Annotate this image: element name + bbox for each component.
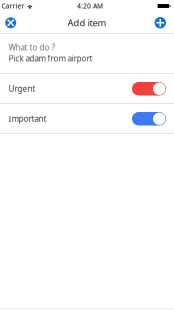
staticText: Pick adam from airport: [8, 53, 92, 64]
staticText: 4:20 AM: [77, 2, 103, 10]
button[interactable]: Important: [0, 104, 174, 133]
staticText: Add item: [67, 17, 106, 29]
button[interactable]: Add: [149, 13, 174, 32]
staticText: Urgent: [8, 83, 35, 94]
staticText: What to do ?: [8, 42, 54, 53]
button[interactable]: Urgent: [0, 74, 174, 103]
staticText: Important: [8, 113, 46, 124]
staticText: Carrier: [1, 2, 24, 10]
button[interactable]: Close: [0, 13, 21, 32]
button[interactable]: What to do ?: [0, 34, 174, 73]
